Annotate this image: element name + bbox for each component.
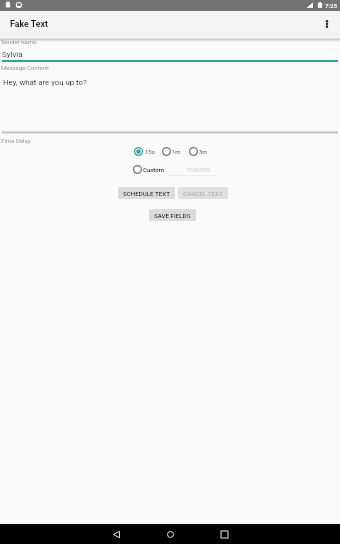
- staticText: Sylvia: [2, 50, 23, 59]
- staticText: Custom: [143, 166, 164, 173]
- staticText: 7:25: [325, 2, 337, 9]
- button[interactable]: Recent apps: [204, 524, 245, 544]
- button[interactable]: CANCEL TEXT: [178, 187, 228, 199]
- staticText: 3m: [199, 148, 208, 155]
- button[interactable]: 1m: [162, 147, 181, 156]
- staticText: SCHEDULE TEXT: [123, 190, 170, 197]
- button[interactable]: Home: [150, 524, 191, 544]
- staticText: CANCEL TEXT: [183, 190, 223, 197]
- staticText: 1m: [172, 148, 181, 155]
- button[interactable]: Custom: [133, 165, 164, 174]
- staticText: Time Delay: [1, 137, 31, 144]
- staticText: 15s: [145, 148, 155, 155]
- button[interactable]: SAVE FIELDS: [149, 209, 196, 221]
- button[interactable]: More options: [319, 16, 335, 32]
- staticText: Message Content:: [1, 64, 50, 71]
- staticText: Sender name:: [1, 38, 38, 45]
- button[interactable]: Back: [96, 524, 137, 544]
- staticText: Hey, what are you up to?: [3, 78, 87, 87]
- staticText: Fake Text: [10, 19, 48, 29]
- button[interactable]: SCHEDULE TEXT: [118, 187, 175, 199]
- button[interactable]: 3m: [189, 147, 208, 156]
- staticText: SAVE FIELDS: [154, 212, 191, 219]
- staticText: minutes: [187, 166, 210, 174]
- button[interactable]: 15s: [134, 147, 155, 156]
